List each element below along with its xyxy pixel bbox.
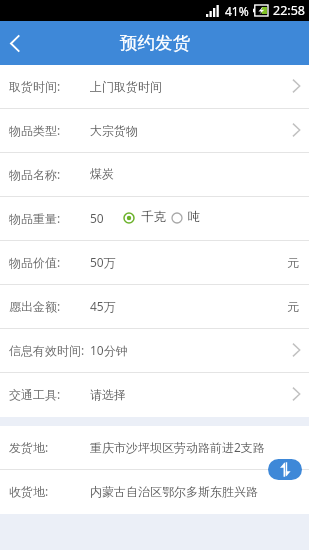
staticText: 预约发货 — [120, 32, 190, 54]
button[interactable]: Back — [0, 21, 30, 65]
staticText: 信息有效时间: — [9, 342, 85, 358]
staticText: 50万 — [90, 254, 116, 270]
staticText: 物品类型: — [9, 122, 61, 138]
staticText: 煤炭 — [90, 166, 114, 181]
staticText: 22:58 — [273, 2, 305, 19]
staticText: 大宗货物 — [90, 123, 138, 138]
staticText: 收货地: — [9, 483, 49, 499]
staticText: 10分钟 — [90, 342, 128, 358]
staticText: 千克 — [141, 209, 166, 225]
button[interactable]: Swap addresses — [268, 459, 302, 480]
staticText: 发货地: — [9, 439, 49, 455]
staticText: 吨 — [188, 209, 201, 225]
staticText: 物品名称: — [9, 166, 61, 182]
button[interactable]: 愿出金额: — [0, 285, 309, 328]
staticText: 45万 — [90, 298, 116, 314]
staticText: 物品重量: — [9, 210, 61, 226]
button[interactable]: 取货时间: — [0, 65, 309, 108]
staticText: 物品价值: — [9, 254, 61, 270]
staticText: 41% — [225, 3, 249, 19]
button[interactable]: 收货地: — [0, 470, 309, 514]
button[interactable]: 物品名称: — [0, 153, 309, 196]
staticText: 请选择 — [90, 387, 126, 402]
staticText: 重庆市沙坪坝区劳动路前进2支路 — [90, 439, 265, 455]
button[interactable]: 物品类型: — [0, 109, 309, 152]
button[interactable]: 交通工具: — [0, 373, 309, 417]
staticText: 取货时间: — [9, 78, 61, 94]
button[interactable]: 物品重量: — [0, 197, 309, 240]
staticText: 交通工具: — [9, 386, 61, 402]
staticText: 上门取货时间 — [90, 79, 162, 94]
staticText: 50 — [90, 210, 104, 226]
button[interactable]: 发货地: — [0, 426, 309, 469]
button[interactable]: 物品价值: — [0, 241, 309, 284]
staticText: 元 — [287, 255, 299, 270]
button[interactable]: 信息有效时间: — [0, 329, 309, 372]
staticText: 元 — [287, 299, 299, 314]
staticText: 内蒙古自治区鄂尔多斯东胜兴路 — [90, 484, 258, 499]
staticText: 愿出金额: — [9, 298, 61, 314]
